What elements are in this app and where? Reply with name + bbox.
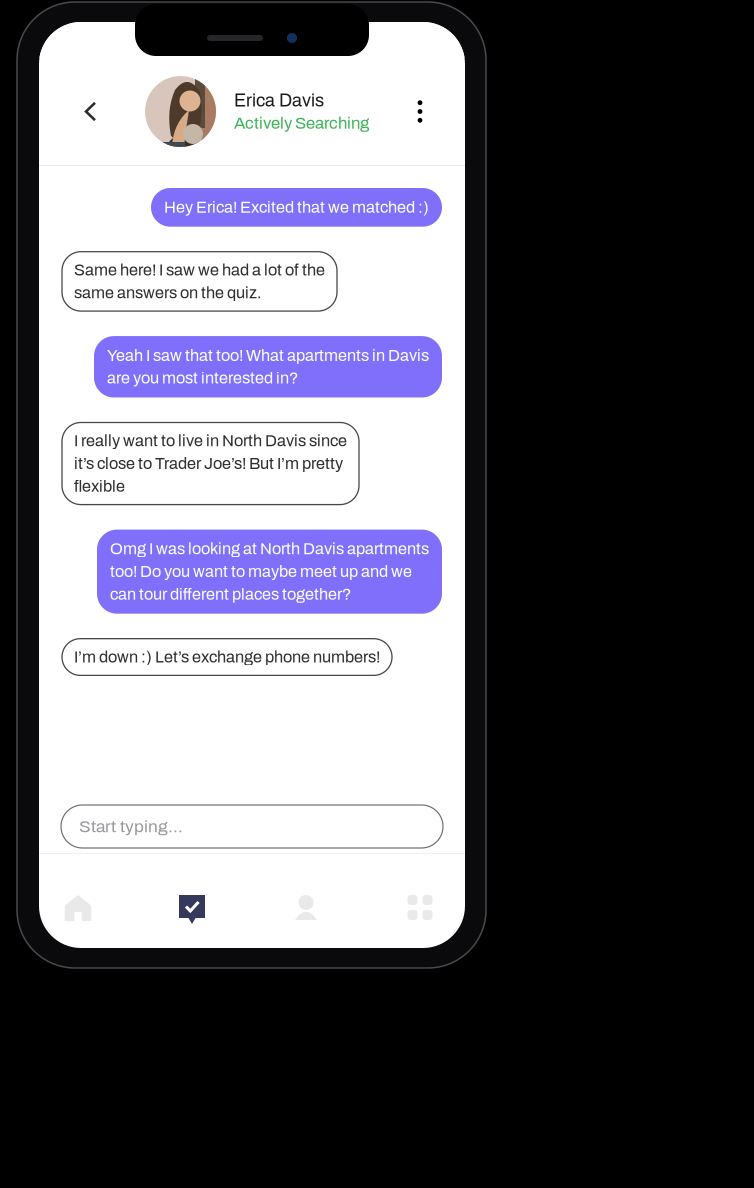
staticText: Start typing... [79,817,183,836]
button[interactable]: Browse [387,895,453,989]
button[interactable]: More options [405,68,435,154]
button[interactable]: Home [45,895,111,989]
button[interactable]: Profile [273,895,339,989]
button[interactable]: Start typing... [61,805,443,848]
staticText: Actively Searching [234,114,369,132]
staticText: Hey Erica! Excited that we matched :) [164,198,429,216]
staticText: Yeah I saw that too! What apartments in … [107,347,429,387]
button[interactable]: Messages [159,895,225,989]
staticText: I really want to live in North Davis sin… [74,432,347,495]
button[interactable]: Back [68,68,113,154]
staticText: I’m down :) Let’s exchange phone numbers… [74,648,380,666]
staticText: Omg I was looking at North Davis apartme… [110,540,429,603]
staticText: Erica Davis [234,91,324,110]
staticText: Same here! I saw we had a lot of the sam… [74,261,325,302]
